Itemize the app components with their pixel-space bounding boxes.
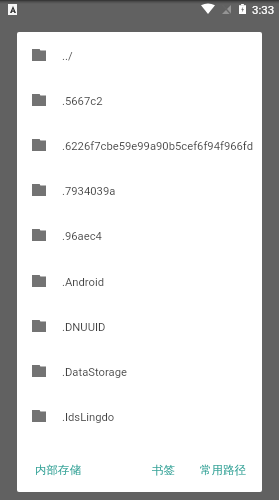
- staticText: .96aec4: [62, 230, 102, 243]
- staticText: .7934039a: [62, 185, 116, 198]
- staticText: 书签: [152, 463, 175, 477]
- button[interactable]: 书签: [152, 457, 175, 483]
- button[interactable]: .IdsLingdo: [17, 393, 262, 438]
- staticText: 3:33: [252, 3, 275, 16]
- button[interactable]: ../: [17, 32, 262, 77]
- staticText: .IdsLingdo: [62, 411, 115, 424]
- button[interactable]: .Android: [17, 258, 262, 303]
- staticText: .5667c2: [62, 95, 103, 108]
- staticText: .DNUUID: [62, 321, 106, 334]
- staticText: ../: [62, 50, 73, 63]
- button[interactable]: .DNUUID: [17, 303, 262, 348]
- button[interactable]: .DataStorage: [17, 348, 262, 393]
- staticText: 内部存储: [35, 463, 81, 477]
- button[interactable]: .6226f7cbe59e99a90b5cef6f94f966fd: [17, 122, 262, 167]
- button[interactable]: .5667c2: [17, 77, 262, 122]
- staticText: .6226f7cbe59e99a90b5cef6f94f966fd: [62, 140, 253, 153]
- staticText: .DataStorage: [62, 366, 127, 379]
- button[interactable]: 常用路径: [200, 457, 262, 483]
- button[interactable]: .96aec4: [17, 212, 262, 257]
- button[interactable]: .7934039a: [17, 167, 262, 212]
- staticText: .Android: [62, 276, 105, 289]
- other: App icon: [8, 4, 17, 15]
- staticText: 常用路径: [200, 463, 246, 477]
- button[interactable]: 内部存储: [17, 457, 81, 483]
